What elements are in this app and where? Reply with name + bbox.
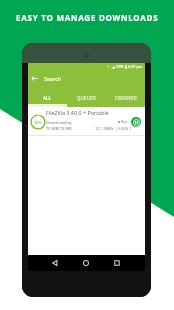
staticText: 8m: [121, 119, 128, 125]
staticText: 70 MB/73 MB: [46, 126, 72, 132]
staticText: ALL: [43, 95, 52, 101]
button[interactable]: 96%: [28, 107, 145, 136]
button[interactable]: Pause download: [131, 117, 141, 127]
button[interactable]: Home: [80, 257, 92, 269]
staticText: EASY TO MANAGE DOWNLOADS: [16, 12, 159, 23]
staticText: FINISHED: [115, 95, 137, 101]
button[interactable]: ALL: [28, 92, 67, 107]
button[interactable]: FINISHED: [106, 92, 145, 107]
staticText: 96%: [34, 120, 42, 125]
button[interactable]: Back: [49, 257, 61, 269]
staticText: 6:07 pm: [128, 64, 143, 69]
button[interactable]: QUEUED: [67, 92, 106, 107]
button[interactable]: Recent apps: [111, 257, 123, 269]
staticText: 12.1 MB/s | 6.0/6.1: [95, 126, 132, 132]
staticText: FileZilla 3.40.0 + Portable: [46, 109, 109, 116]
staticText: 29%: [116, 64, 124, 69]
staticText: QUEUED: [77, 95, 97, 101]
staticText: Search: [44, 75, 62, 82]
staticText: Downloading: [46, 120, 72, 126]
button[interactable]: Back: [30, 74, 39, 83]
